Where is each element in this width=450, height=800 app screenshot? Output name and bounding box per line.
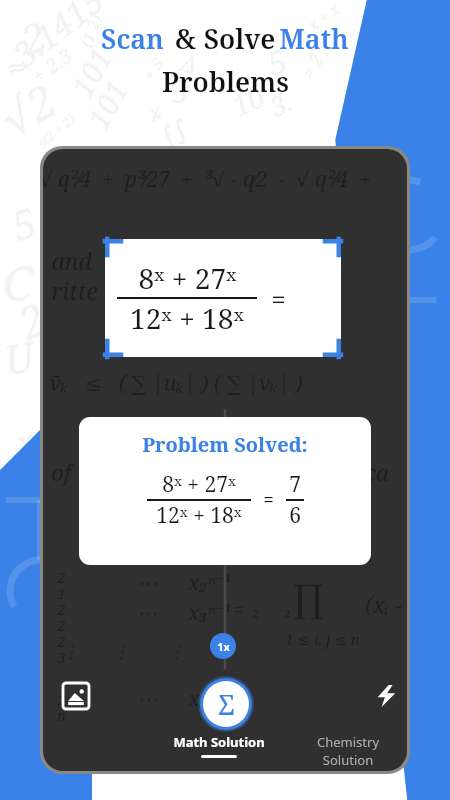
- staticText: =: [271, 281, 286, 316]
- staticText: 101: [77, 72, 137, 137]
- staticText: 10: [225, 77, 271, 125]
- staticText: ⋯ xₙⁿ⁻: [137, 685, 223, 712]
- staticText: 8ˣ + 27ˣ: [162, 470, 236, 499]
- staticText: x: [11, 418, 39, 466]
- staticText: 6: [289, 501, 301, 530]
- staticText: 2: [57, 689, 66, 709]
- staticText: =: [263, 487, 274, 513]
- staticText: 3: [165, 68, 192, 112]
- button[interactable]: 1x: [210, 633, 236, 659]
- staticText: Scan: [101, 20, 164, 57]
- staticText: ritte: [51, 275, 98, 306]
- staticText: ∏: [293, 577, 324, 621]
- button[interactable]: Capture and solve: [198, 676, 254, 732]
- staticText: (1 2): [75, 11, 107, 51]
- staticText: 3.: [264, 83, 298, 124]
- staticText: Σ: [218, 686, 235, 723]
- staticText: ⋯ x₃ⁿ⁻¹: [137, 599, 231, 626]
- button[interactable]: Chemistry Solution: [289, 733, 407, 769]
- staticText: Math: [279, 20, 349, 57]
- staticText: + 5: [138, 53, 169, 85]
- staticText: 2: [57, 599, 66, 619]
- staticText: 3: [57, 647, 66, 667]
- staticText: (xᵢ −: [365, 589, 402, 619]
- staticText: ≈: [2, 50, 31, 84]
- staticText: Solve: [200, 20, 279, 57]
- staticText: Chemistry Solution: [291, 733, 405, 769]
- staticText: 101: [61, 40, 121, 105]
- staticText: 2: [0, 468, 37, 521]
- staticText: x: [143, 95, 166, 127]
- staticText: of: [51, 457, 71, 487]
- staticText: Problems: [162, 63, 289, 100]
- button[interactable]: Open gallery: [61, 681, 91, 711]
- staticText: v̄ₖ ≤ ( ∑ |uₖ| ) ( ∑ |vₖ| ): [49, 369, 303, 398]
- staticText: 2: [57, 615, 66, 635]
- staticText: 1x: [217, 639, 230, 654]
- staticText: ∫∫: [155, 113, 193, 152]
- staticText: n: [57, 705, 66, 725]
- staticText: C: [2, 250, 33, 315]
- staticText: √ q²⁄4 + p³⁄27 + ³√ − q⁄2 − √ q²⁄4 +: [43, 165, 371, 194]
- staticText: ⋯ x₂ⁿ⁻¹: [137, 569, 231, 596]
- staticText: U: [0, 328, 38, 386]
- staticText: 5: [261, 38, 293, 86]
- staticText: 1 ≤ i, j ≤ n: [285, 629, 360, 649]
- staticText: 1: [57, 583, 66, 603]
- staticText: and the C: [51, 245, 224, 276]
- staticText: x + x: [303, 0, 344, 36]
- staticText: 8ˣ + 27ˣ: [138, 259, 237, 297]
- staticText: + 2.3: [26, 42, 78, 89]
- staticText: 12ˣ + 18ˣ: [156, 501, 242, 530]
- staticText: √2: [0, 68, 68, 151]
- staticText: Problem Solved:: [142, 431, 308, 458]
- staticText: Math Solution: [173, 733, 265, 751]
- button[interactable]: Problem Solved:: [79, 417, 371, 565]
- button[interactable]: Toggle flash: [369, 679, 403, 713]
- staticText: - 2): [284, 25, 313, 54]
- staticText: &: [164, 20, 200, 57]
- staticText: 2: [13, 8, 54, 66]
- staticText: 2: [57, 567, 66, 587]
- button[interactable]: Math Solution: [171, 733, 267, 758]
- staticText: 12ˣ + 18ˣ: [130, 299, 244, 337]
- staticText: 7: [289, 470, 301, 499]
- staticText: 3.1415: [3, 0, 113, 77]
- staticText: ca: [365, 457, 389, 487]
- staticText: s(2 + 2): [33, 110, 79, 152]
- staticText: Δ: [179, 47, 199, 79]
- staticText: 2: [57, 631, 66, 651]
- staticText: 2: [8, 287, 56, 352]
- staticText: 241: [347, 20, 398, 73]
- staticText: 5: [3, 194, 44, 252]
